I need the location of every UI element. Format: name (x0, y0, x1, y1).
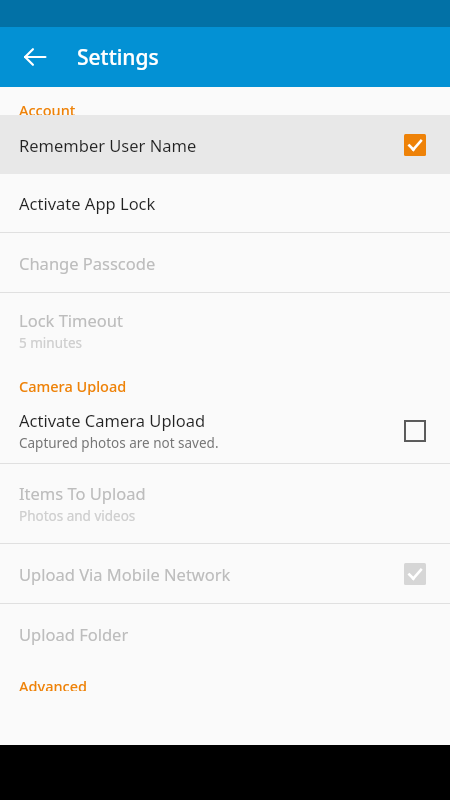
button[interactable]: Remember User Name (0, 115, 450, 174)
staticText: Captured photos are not saved. (19, 434, 219, 452)
staticText: Advanced (19, 676, 87, 691)
staticText: Camera Upload (19, 376, 127, 396)
staticText: Lock Timeout (19, 309, 123, 331)
button[interactable]: Activate Camera Upload checkbox (398, 414, 432, 448)
staticText: Photos and videos (19, 507, 136, 525)
button[interactable]: Items To Upload (0, 464, 450, 543)
button[interactable]: Upload Via Mobile Network (0, 544, 450, 603)
staticText: Activate App Lock (19, 192, 156, 214)
staticText: Items To Upload (19, 482, 146, 504)
staticText: Account (19, 100, 76, 115)
button[interactable]: Upload Folder (0, 604, 450, 663)
staticText: Upload Via Mobile Network (19, 563, 231, 585)
button[interactable]: Activate App Lock (0, 174, 450, 232)
button[interactable]: Activate Camera Upload (0, 398, 450, 463)
button[interactable]: Back (13, 35, 57, 79)
staticText: Upload Folder (19, 623, 129, 645)
button[interactable]: Remember User Name checkbox (398, 128, 432, 162)
staticText: 5 minutes (19, 334, 82, 352)
staticText: Activate Camera Upload (19, 409, 206, 431)
button[interactable]: Upload Via Mobile Network checkbox (398, 557, 432, 591)
staticText: Settings (77, 43, 159, 72)
staticText: Change Passcode (19, 252, 156, 274)
button[interactable]: Lock Timeout (0, 293, 450, 367)
button[interactable]: Change Passcode (0, 233, 450, 292)
staticText: Remember User Name (19, 134, 197, 156)
